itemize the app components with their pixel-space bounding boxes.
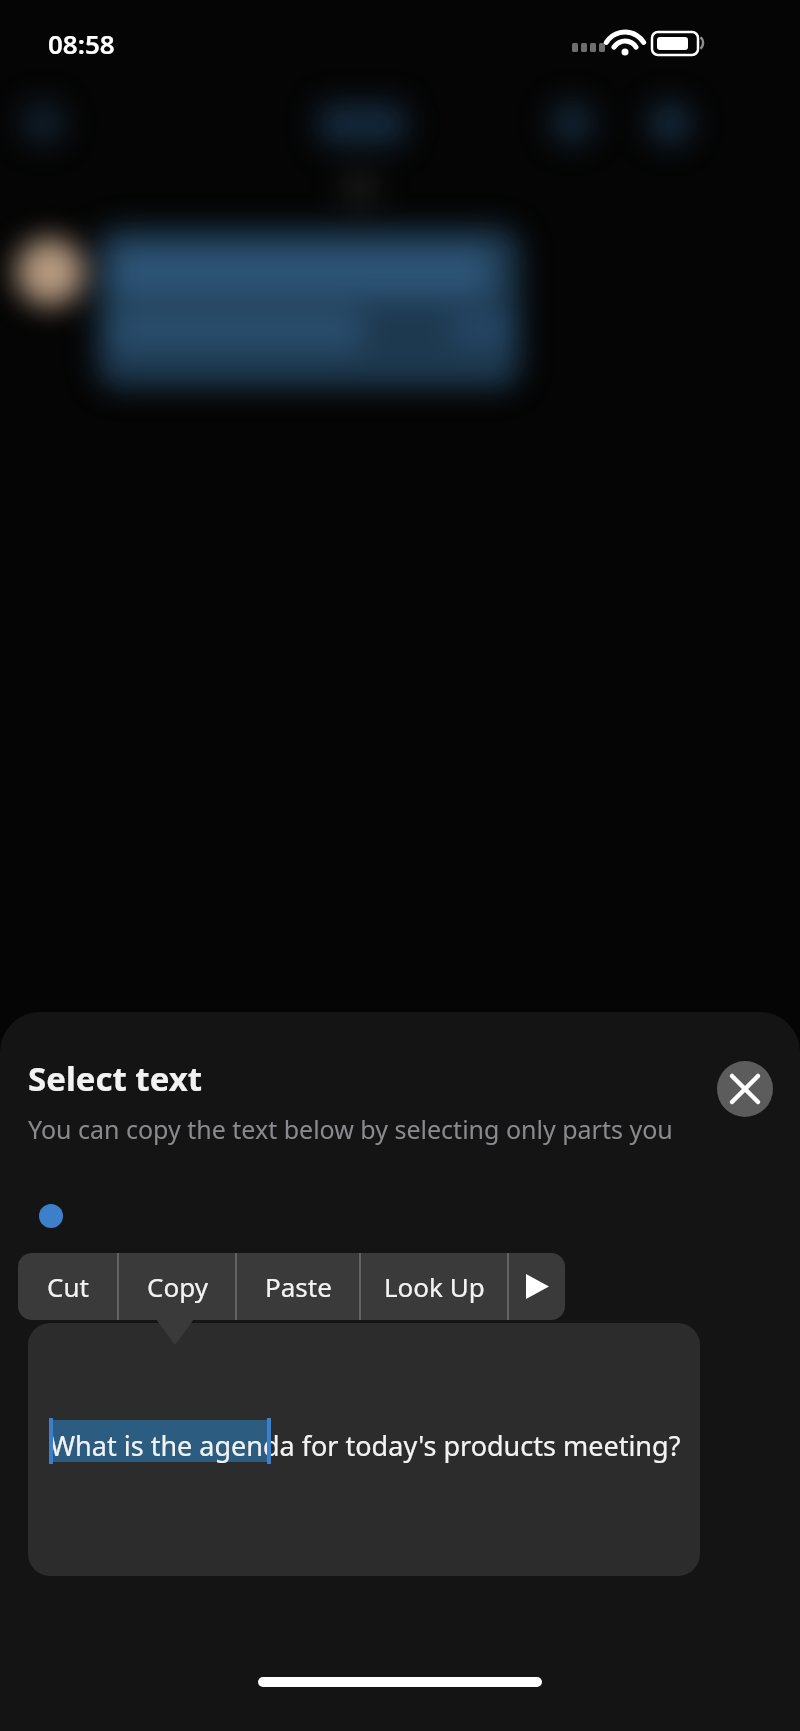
button[interactable]: Paste: [236, 1253, 360, 1320]
button[interactable]: Copy: [118, 1253, 236, 1320]
button[interactable]: [28, 1323, 700, 1576]
button[interactable]: Cut: [18, 1253, 118, 1320]
staticText: Cut: [47, 1269, 89, 1304]
button[interactable]: Close: [717, 1061, 773, 1117]
staticText: Copy: [147, 1269, 208, 1304]
staticText: 08:58: [48, 26, 115, 61]
staticText: Paste: [265, 1269, 332, 1304]
button[interactable]: Look Up: [360, 1253, 508, 1320]
staticText: Select text: [28, 1056, 203, 1101]
staticText: You can copy the text below by selecting…: [28, 1112, 673, 1146]
button[interactable]: More options: [508, 1253, 565, 1320]
staticText: What is the agenda for today's products …: [50, 1427, 681, 1464]
staticText: Look Up: [384, 1269, 485, 1304]
